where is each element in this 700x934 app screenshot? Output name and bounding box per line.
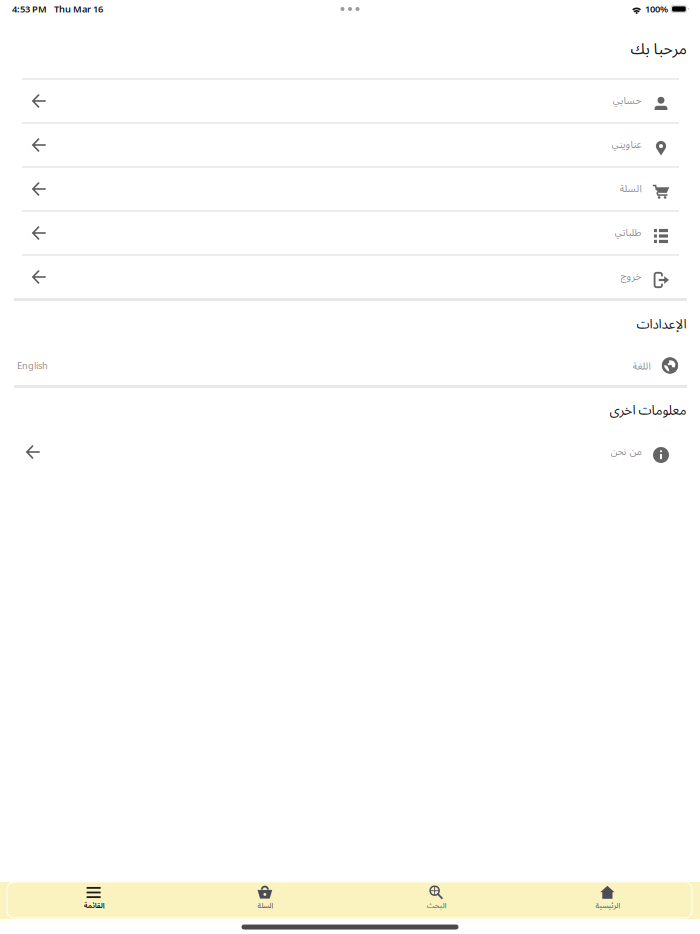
button[interactable]: حسابي xyxy=(0,80,700,122)
staticText: خروج xyxy=(620,269,641,283)
staticText: اللغة xyxy=(632,359,650,372)
button[interactable]: السلة xyxy=(179,882,350,919)
button[interactable]: الرئيسية xyxy=(522,882,693,919)
staticText: English xyxy=(17,359,48,372)
staticText: الرئيسية xyxy=(595,900,620,910)
button[interactable]: القائمة xyxy=(8,882,179,919)
button[interactable]: من نحن xyxy=(0,431,700,473)
staticText: من نحن xyxy=(610,444,641,458)
staticText: البحث xyxy=(426,900,446,910)
staticText: السلة xyxy=(257,900,273,910)
button[interactable]: طلباتي xyxy=(0,212,700,254)
staticText: الإعدادات xyxy=(636,314,686,333)
button[interactable]: السلة xyxy=(0,168,700,210)
staticText: Thu Mar 16 xyxy=(54,3,103,15)
staticText: السلة xyxy=(619,181,641,195)
button[interactable]: البحث xyxy=(350,882,522,919)
staticText: عناويني xyxy=(611,137,641,151)
staticText: مرحبا بك xyxy=(630,37,686,59)
staticText: طلباتي xyxy=(614,225,641,239)
staticText: 100% xyxy=(645,3,668,15)
staticText: حسابي xyxy=(612,93,641,107)
button[interactable]: خروج xyxy=(0,256,700,298)
button[interactable]: عناويني xyxy=(0,124,700,166)
staticText: القائمة xyxy=(83,900,104,910)
staticText: 4:53 PM xyxy=(12,3,47,15)
button[interactable]: English xyxy=(0,346,700,385)
staticText: معلومات اخرى xyxy=(609,400,686,419)
